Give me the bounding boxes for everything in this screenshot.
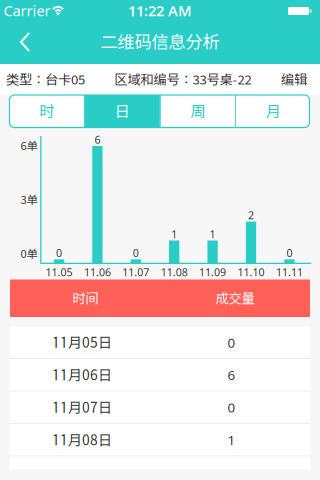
button[interactable]: 时 [9, 95, 84, 127]
button[interactable]: Back [3, 28, 47, 56]
staticText: 0 [133, 246, 139, 260]
staticText: 11月07日 [52, 399, 112, 416]
staticText: 11:22 AM [128, 1, 192, 20]
button[interactable]: 月 [236, 95, 310, 127]
staticText: 1 [227, 431, 235, 449]
staticText: 0 [56, 246, 62, 260]
staticText: 11月06日 [52, 367, 112, 383]
staticText: 11月05日 [52, 334, 112, 351]
button[interactable]: 周 [161, 95, 235, 127]
staticText: 6 [94, 132, 100, 147]
staticText: 0 [286, 246, 292, 260]
staticText: 11.05 [45, 265, 72, 279]
staticText: 6单 [20, 139, 37, 152]
staticText: 0 [227, 334, 235, 351]
staticText: 编辑 [281, 72, 307, 87]
staticText: 11月08日 [52, 432, 112, 448]
button[interactable]: 11月05日 [10, 327, 310, 358]
staticText: 0 [227, 398, 235, 416]
staticText: 11.06 [84, 265, 111, 279]
staticText: 日 [115, 102, 130, 120]
staticText: 11.08 [161, 265, 188, 279]
staticText: 月 [266, 102, 281, 120]
staticText: 0单 [20, 247, 37, 260]
button[interactable]: 11月08日 [10, 424, 310, 456]
staticText: 周 [190, 102, 205, 120]
staticText: Carrier [3, 1, 50, 20]
button[interactable]: 11月07日 [10, 391, 310, 423]
staticText: 11.10 [237, 265, 264, 279]
staticText: 2 [248, 208, 254, 222]
button[interactable]: 日 [85, 95, 160, 127]
staticText: 1 [171, 227, 177, 241]
staticText: 时 [39, 102, 54, 120]
staticText: 6 [227, 366, 235, 384]
staticText: 3单 [20, 193, 37, 206]
staticText: 11.07 [122, 265, 149, 279]
staticText: 成交量 [215, 290, 254, 306]
staticText: 时间 [72, 290, 98, 306]
staticText: 1 [210, 227, 216, 241]
staticText: 11.09 [199, 265, 226, 279]
staticText: 二维码信息分析 [100, 32, 219, 52]
staticText: 11.11 [276, 265, 303, 279]
staticText: 区域和编号：33号桌-22 [114, 72, 251, 87]
button[interactable]: 编辑 [281, 72, 307, 87]
staticText: 类型：台卡05 [6, 72, 85, 87]
button[interactable]: 11月06日 [10, 359, 310, 391]
